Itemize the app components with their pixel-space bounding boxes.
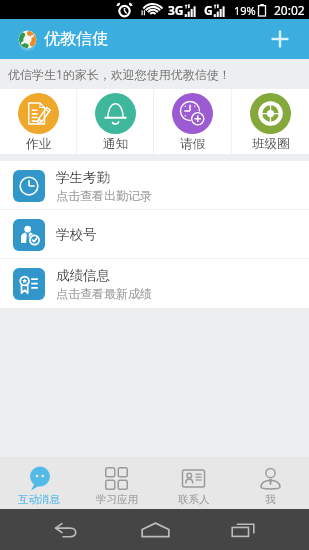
button[interactable]: Back xyxy=(43,509,89,550)
button[interactable]: Add xyxy=(259,19,309,59)
staticText: 学校号 xyxy=(56,226,97,243)
button[interactable]: 班级圈 xyxy=(232,89,309,154)
button[interactable]: 成绩信息 xyxy=(0,259,309,308)
button[interactable]: 学校号 xyxy=(0,210,309,259)
button[interactable]: 学习应用 xyxy=(78,457,155,509)
button[interactable]: 通知 xyxy=(77,89,153,154)
staticText: 请假 xyxy=(180,136,205,152)
staticText: 优教信使 xyxy=(44,29,108,49)
staticText: 联系人 xyxy=(178,493,210,506)
staticText: 点击查看出勤记录 xyxy=(56,188,152,203)
staticText: 优信学生1的家长，欢迎您使用优教信使！ xyxy=(8,66,231,82)
button[interactable]: 作业 xyxy=(0,89,76,154)
staticText: 3G xyxy=(168,2,184,18)
staticText: 班级圈 xyxy=(252,136,290,152)
staticText: 通知 xyxy=(103,136,128,152)
staticText: 学生考勤 xyxy=(56,169,110,186)
staticText: 互动消息 xyxy=(18,493,60,506)
staticText: 20:02 xyxy=(274,2,305,18)
button[interactable]: Home xyxy=(132,509,178,550)
staticText: 作业 xyxy=(26,136,51,152)
button[interactable]: 联系人 xyxy=(155,457,232,509)
button[interactable]: 学生考勤 xyxy=(0,161,309,210)
staticText: G xyxy=(204,2,213,18)
staticText: 19% xyxy=(234,3,256,18)
button[interactable]: 我 xyxy=(232,457,309,509)
staticText: 学习应用 xyxy=(96,493,138,506)
staticText: 我 xyxy=(265,493,276,506)
button[interactable]: Recents xyxy=(220,509,266,550)
button[interactable]: 请假 xyxy=(154,89,231,154)
button[interactable]: 互动消息 xyxy=(0,457,78,509)
staticText: 成绩信息 xyxy=(56,267,110,284)
staticText: 点击查看最新成绩 xyxy=(56,286,152,301)
